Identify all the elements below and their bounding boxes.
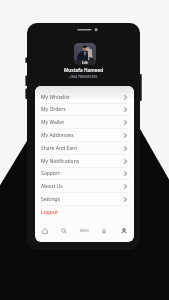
button[interactable]: Edit profile photo bbox=[74, 43, 96, 65]
button[interactable]: Logout bbox=[35, 206, 134, 219]
staticText: MENU bbox=[80, 229, 89, 233]
staticText: Edit bbox=[82, 61, 88, 65]
staticText: Settings bbox=[41, 196, 61, 203]
staticText: Mustafa Hameed bbox=[64, 67, 104, 73]
staticText: My Wallet bbox=[41, 119, 64, 126]
staticText: About Us bbox=[41, 183, 63, 190]
staticText: My Notifications bbox=[41, 158, 80, 165]
button[interactable]: Settings bbox=[35, 193, 134, 206]
staticText: Share And Earn bbox=[41, 145, 78, 152]
staticText: +964 7805/05250 bbox=[69, 74, 98, 79]
button[interactable]: About Us bbox=[35, 180, 134, 193]
button[interactable]: Home bbox=[35, 225, 54, 237]
button[interactable]: Menu bbox=[74, 225, 94, 237]
staticText: My Whitelist bbox=[41, 94, 70, 101]
staticText: Logout bbox=[41, 209, 58, 216]
staticText: My Addresses bbox=[41, 132, 74, 139]
button[interactable]: My Wallet bbox=[35, 116, 134, 129]
button[interactable]: Profile bbox=[114, 225, 134, 237]
staticText: Support bbox=[41, 170, 60, 177]
button[interactable]: My Orders bbox=[35, 103, 134, 116]
button[interactable]: Search bbox=[54, 225, 74, 237]
button[interactable]: Share And Earn bbox=[35, 142, 134, 155]
button[interactable]: My Notifications bbox=[35, 155, 134, 168]
button[interactable]: My Whitelist bbox=[35, 91, 134, 104]
staticText: My Orders bbox=[41, 106, 66, 113]
button[interactable]: My Addresses bbox=[35, 129, 134, 142]
button[interactable]: Support bbox=[35, 167, 134, 180]
button[interactable]: Notifications bbox=[94, 225, 114, 237]
